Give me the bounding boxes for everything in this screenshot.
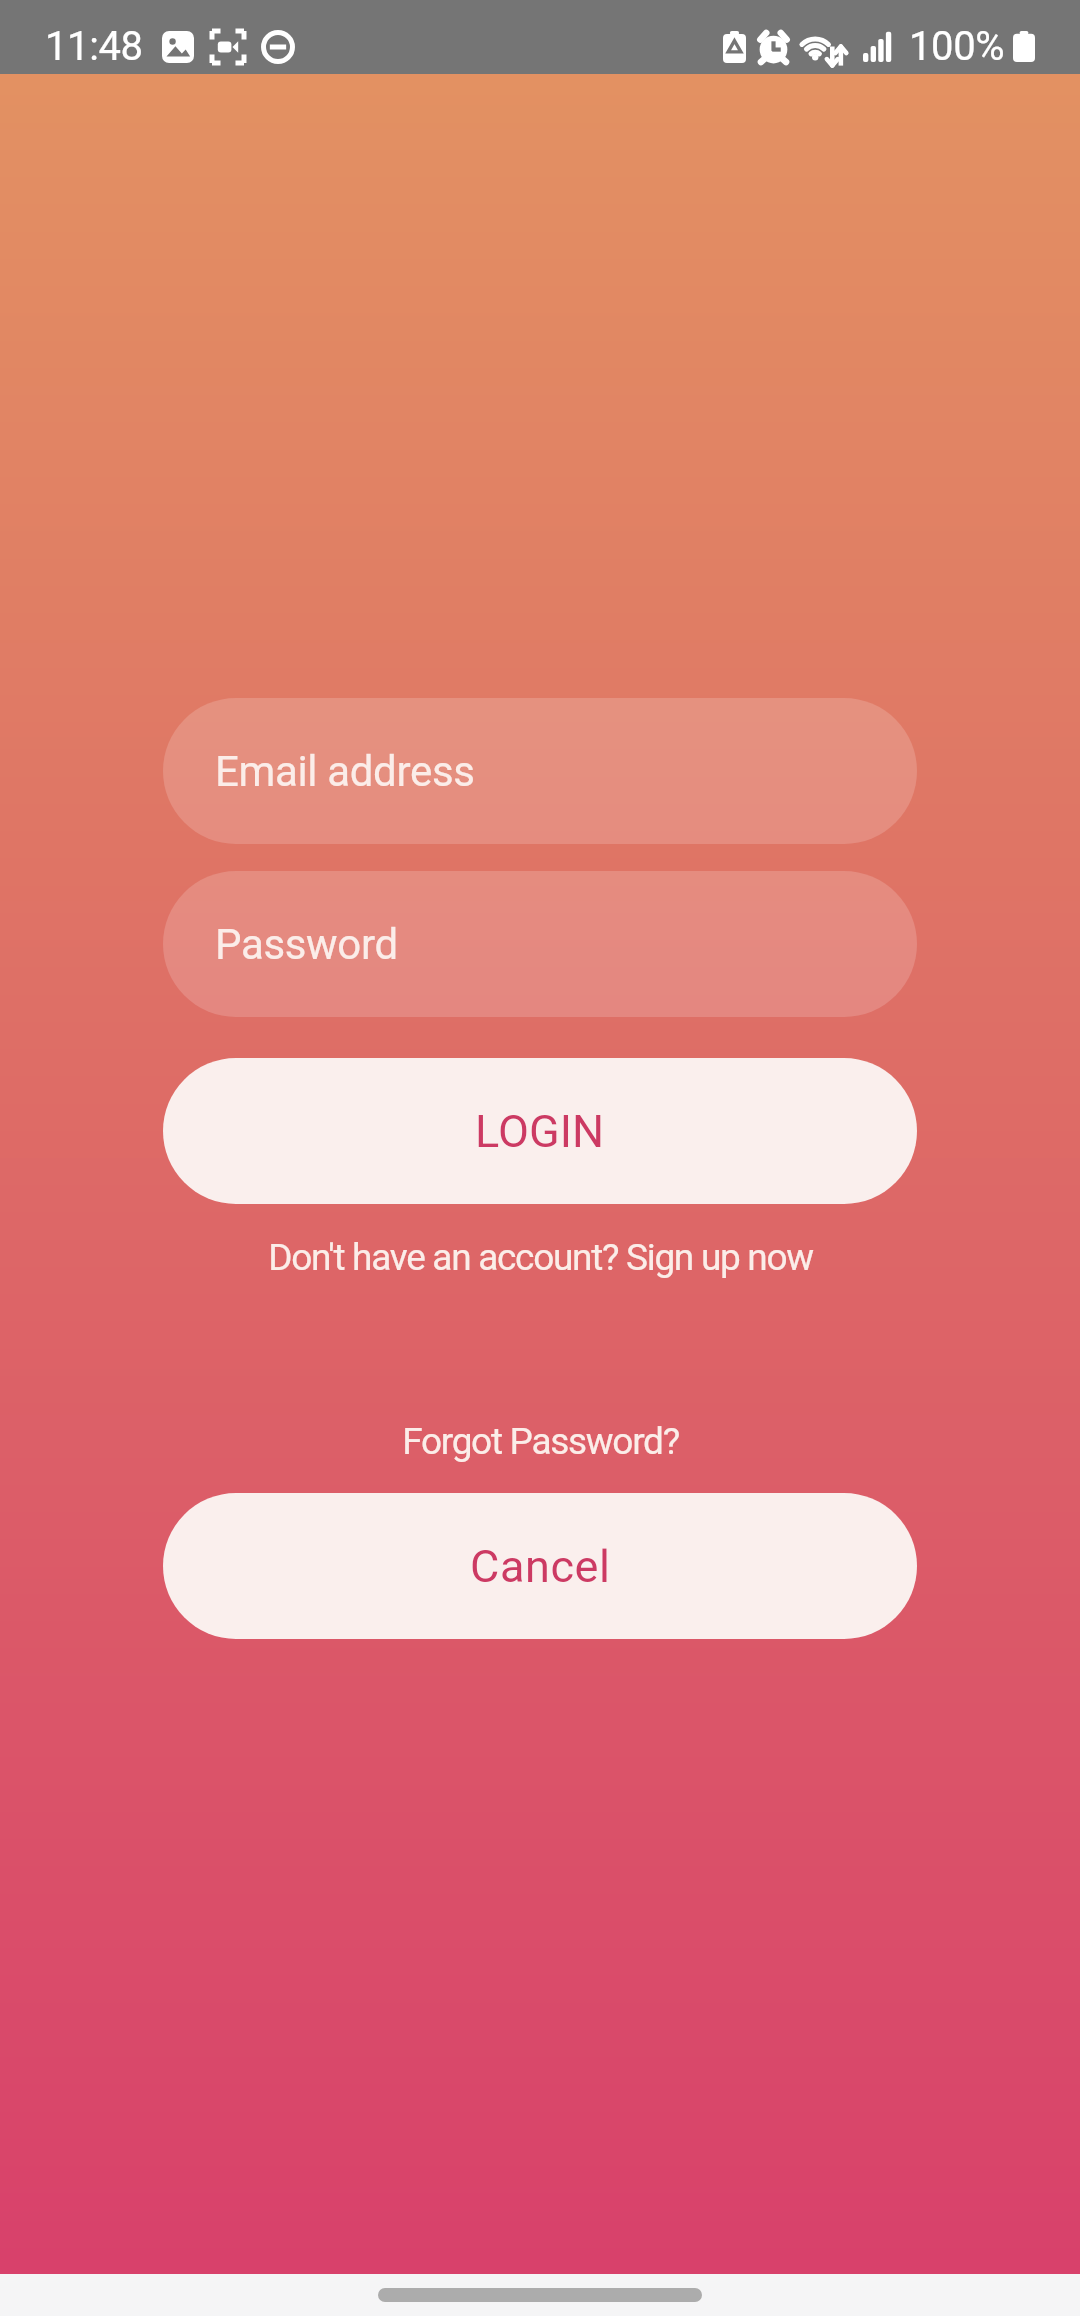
other: Mobile signal bbox=[863, 32, 892, 62]
staticText: Cancel bbox=[470, 1540, 611, 1593]
other: Wi-Fi connected bbox=[799, 27, 844, 66]
staticText: LOGIN bbox=[475, 1105, 605, 1158]
other: Screenshot bbox=[162, 31, 194, 63]
button[interactable]: Password bbox=[163, 871, 917, 1017]
other: Home gesture bar bbox=[378, 2288, 702, 2302]
button[interactable]: Forgot Password? bbox=[402, 1420, 679, 1463]
button[interactable]: Cancel bbox=[163, 1493, 917, 1639]
staticText: Email address bbox=[215, 747, 475, 796]
staticText: 100% bbox=[909, 23, 1005, 70]
other: Do not disturb bbox=[261, 30, 295, 64]
other: Alarm set bbox=[757, 31, 790, 63]
other: Power saving mode bbox=[723, 31, 746, 63]
other: Battery full bbox=[1013, 31, 1035, 62]
button[interactable]: LOGIN bbox=[163, 1058, 917, 1204]
staticText: Password bbox=[215, 920, 398, 969]
staticText: 11:48 bbox=[45, 23, 143, 70]
button[interactable]: Don't have an account? Sign up now bbox=[268, 1236, 813, 1279]
other: Screen recorder bbox=[211, 30, 245, 64]
button[interactable]: Email address bbox=[163, 698, 917, 844]
